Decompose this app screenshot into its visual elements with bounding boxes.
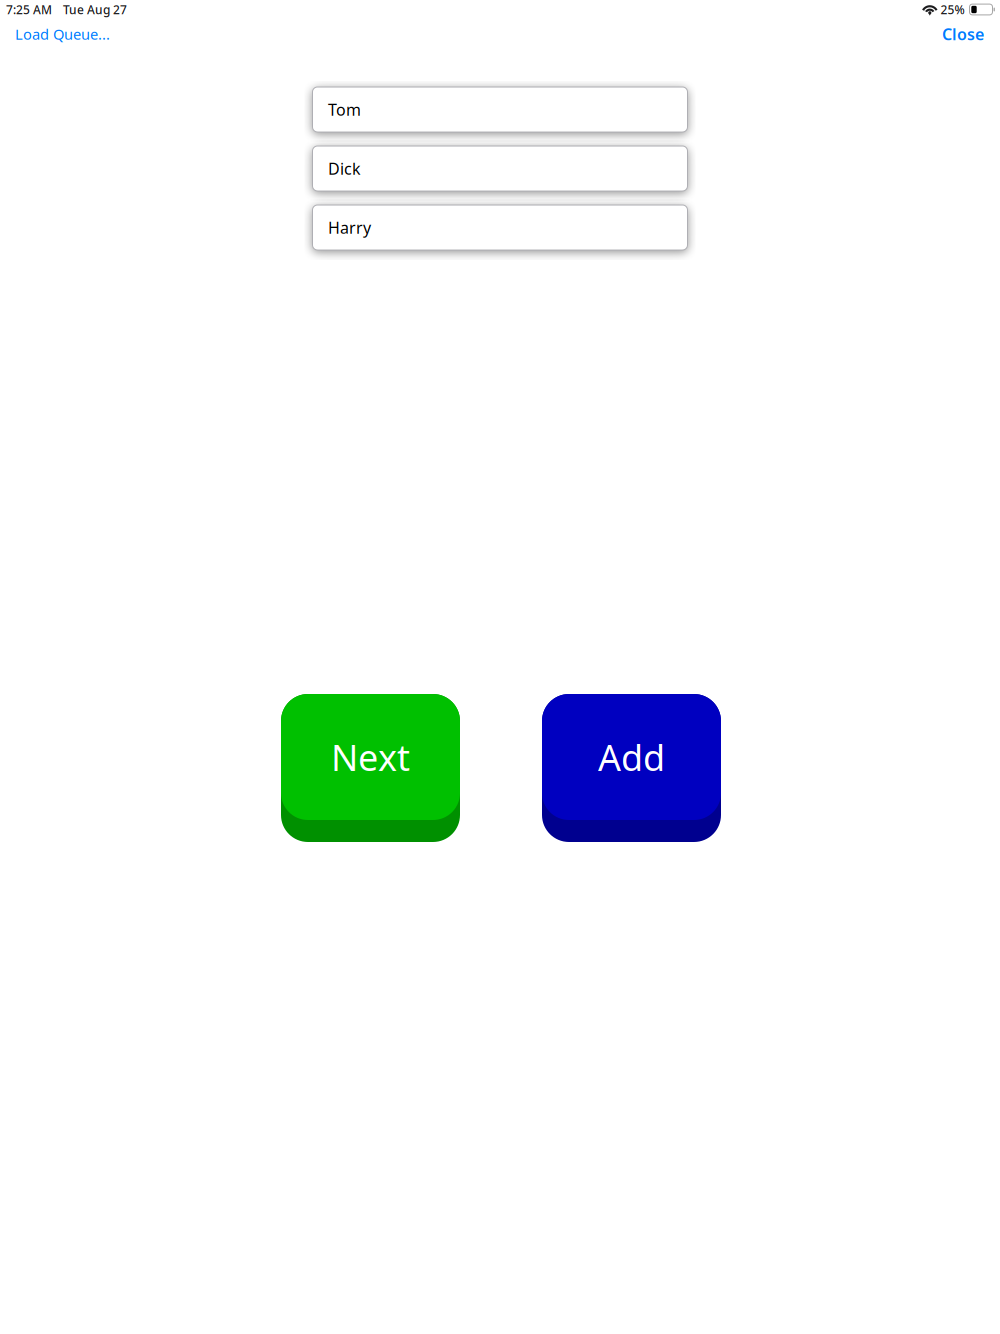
staticText: Dick bbox=[328, 158, 361, 179]
staticText: Tue Aug 27 bbox=[63, 1, 127, 17]
staticText: Tom bbox=[328, 99, 361, 120]
button[interactable]: Harry bbox=[312, 205, 687, 250]
button[interactable]: Dick bbox=[312, 146, 687, 191]
staticText: Add bbox=[598, 733, 665, 781]
button[interactable]: Close bbox=[930, 19, 1000, 49]
staticText: 25% bbox=[940, 1, 964, 17]
button[interactable]: Next bbox=[281, 694, 460, 842]
button[interactable]: Tom bbox=[312, 87, 687, 132]
staticText: Next bbox=[331, 733, 410, 781]
staticText: Close bbox=[942, 23, 984, 45]
button[interactable]: Add bbox=[542, 694, 721, 842]
staticText: 7:25 AM bbox=[6, 1, 52, 17]
staticText: Load Queue... bbox=[15, 24, 110, 44]
staticText: Harry bbox=[328, 217, 371, 238]
button[interactable]: Load Queue... bbox=[0, 19, 122, 49]
